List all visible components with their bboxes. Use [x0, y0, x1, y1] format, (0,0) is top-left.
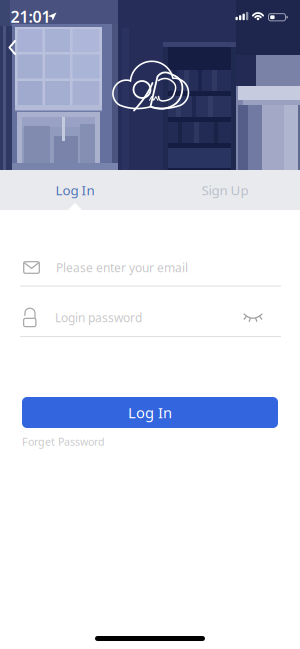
button[interactable]: Please enter your email [23, 250, 280, 284]
staticText: 21:01 [10, 6, 50, 27]
staticText: Sign Up [201, 181, 248, 199]
button[interactable]: Show password [239, 307, 267, 327]
staticText: Login password [55, 309, 142, 325]
button[interactable]: Back [0, 29, 36, 66]
staticText: Log In [128, 403, 172, 422]
button[interactable]: Sign Up [150, 170, 300, 210]
button[interactable]: Forget Password [22, 434, 278, 448]
staticText: Log In [55, 181, 94, 199]
staticText: Forget Password [22, 434, 105, 449]
button[interactable]: Login password [23, 299, 280, 335]
button[interactable]: Log In [22, 397, 278, 428]
staticText: Please enter your email [56, 259, 188, 275]
button[interactable]: Log In [0, 170, 150, 210]
